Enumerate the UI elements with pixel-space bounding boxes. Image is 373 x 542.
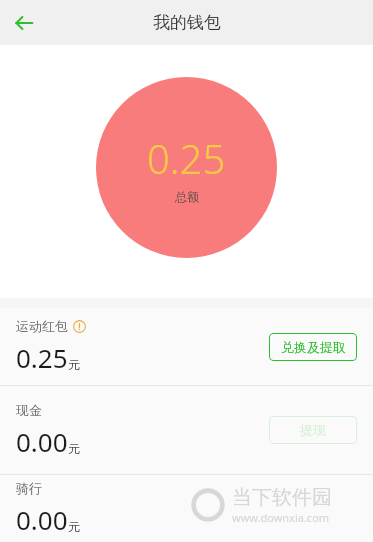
button[interactable]: Back [4,3,44,43]
staticText: 总额 [175,189,199,204]
button[interactable]: 兑换及提取 [269,333,357,361]
staticText: 0.25 [147,131,226,185]
button[interactable]: 提现 [269,416,357,444]
staticText: 骑行 [16,480,42,496]
staticText: 现金 [16,402,42,418]
staticText: 元 [68,441,80,456]
staticText: 提现 [300,422,326,438]
staticText: 兑换及提取 [281,339,346,355]
staticText: 运动红包 [16,318,68,334]
staticText: 当下软件园 [232,485,332,510]
staticText: 0.00 [16,502,68,537]
staticText: 元 [68,357,80,372]
staticText: 0.00 [16,424,68,459]
staticText: 元 [68,519,80,534]
staticText: 我的钱包 [153,12,221,33]
staticText: 0.25 [16,340,68,375]
staticText: www.downxia.com [232,510,330,525]
